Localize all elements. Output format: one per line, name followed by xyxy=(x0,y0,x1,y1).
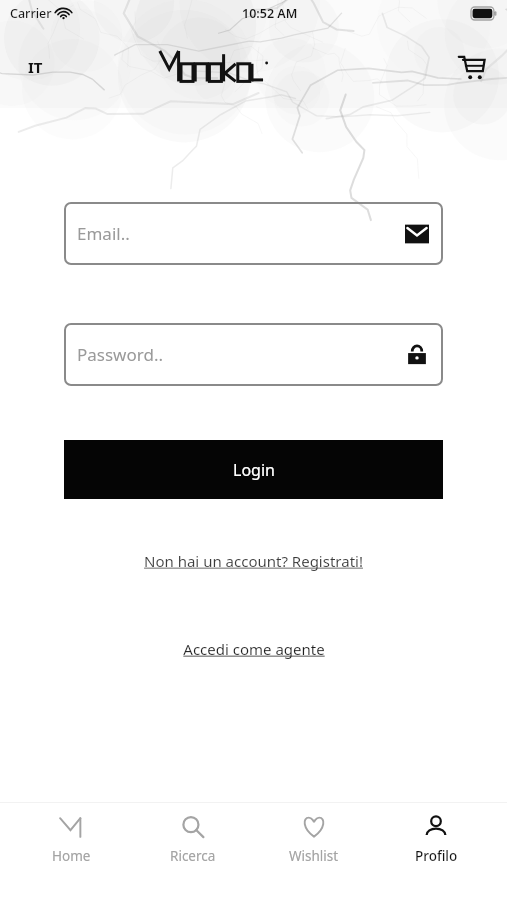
staticText: Home xyxy=(52,847,91,865)
other: Password xyxy=(405,343,429,367)
button[interactable]: Email.. xyxy=(64,202,443,265)
staticText: Ricerca xyxy=(170,847,216,865)
button[interactable]: Ricerca xyxy=(143,810,243,869)
button[interactable]: Password.. xyxy=(64,323,443,386)
staticText: Login xyxy=(233,459,275,481)
button[interactable]: Home xyxy=(21,810,121,869)
staticText: Carrier xyxy=(10,5,52,22)
button[interactable]: Non hai un account? Registrati! xyxy=(0,545,507,577)
button[interactable]: Profilo xyxy=(386,810,486,869)
staticText: Profilo xyxy=(415,847,458,865)
staticText: IT xyxy=(28,57,43,77)
staticText: Wishlist xyxy=(289,847,339,865)
button[interactable]: Cart xyxy=(451,46,493,88)
staticText: Email.. xyxy=(77,222,130,245)
staticText: Password.. xyxy=(77,343,164,366)
button[interactable]: IT xyxy=(14,46,56,88)
button[interactable]: Accedi come agente xyxy=(0,633,507,665)
staticText: 10:52 AM xyxy=(242,5,298,22)
button[interactable]: Login xyxy=(64,440,443,499)
other: Email xyxy=(405,222,429,246)
button[interactable]: Wishlist xyxy=(264,810,364,869)
staticText: Non hai un account? Registrati! xyxy=(144,551,363,571)
staticText: Accedi come agente xyxy=(183,639,325,659)
